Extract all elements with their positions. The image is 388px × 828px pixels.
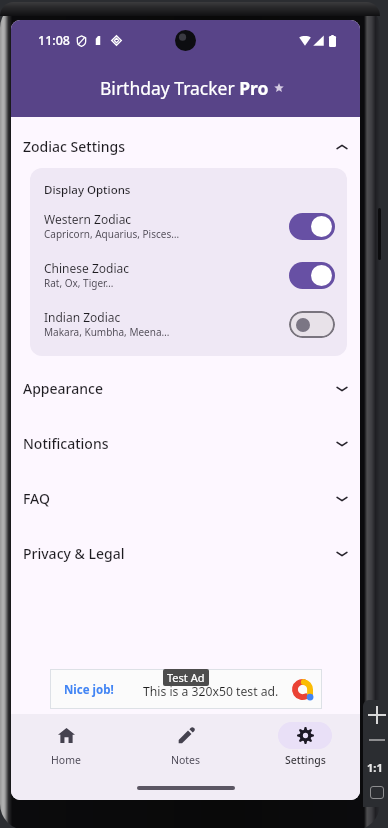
staticText: 1:1 — [367, 760, 383, 775]
button[interactable]: Notifications — [11, 422, 360, 465]
staticText: Chinese Zodiac — [44, 260, 130, 276]
staticText: Makara, Kumbha, Meena… — [44, 325, 170, 339]
staticText: Indian Zodiac — [44, 309, 121, 325]
staticText: Notes — [171, 753, 201, 767]
staticText: Settings — [285, 753, 326, 767]
button[interactable]: Indian Zodiac — [44, 309, 335, 339]
button[interactable]: Toggle on — [289, 213, 335, 240]
staticText: Test Ad — [167, 670, 205, 685]
staticText: This is a 320x50 test ad. — [143, 683, 279, 700]
staticText: Display Options — [44, 182, 131, 198]
button[interactable]: Appearance — [11, 367, 360, 410]
staticText: Nice job! — [64, 682, 114, 698]
staticText: Western Zodiac — [44, 211, 132, 227]
staticText: Notifications — [23, 434, 109, 453]
staticText: Appearance — [23, 379, 103, 398]
button[interactable]: Toggle on — [289, 262, 335, 289]
staticText: Rat, Ox, Tiger… — [44, 276, 114, 290]
button[interactable]: Toggle off — [289, 311, 335, 338]
staticText: Home — [51, 753, 81, 767]
button[interactable]: Home — [39, 714, 93, 774]
button[interactable]: Privacy & Legal — [11, 532, 360, 575]
button[interactable]: FAQ — [11, 477, 360, 520]
button[interactable]: Chinese Zodiac — [44, 260, 335, 290]
button[interactable]: Western Zodiac — [44, 211, 335, 241]
staticText: Capricorn, Aquarius, Pisces… — [44, 227, 180, 241]
staticText: FAQ — [23, 489, 50, 508]
button[interactable]: Notes — [159, 714, 213, 774]
button[interactable]: Settings — [278, 714, 332, 774]
staticText: Birthday Tracker Pro — [100, 76, 269, 100]
staticText: Privacy & Legal — [23, 544, 125, 563]
staticText: 11:08 — [38, 32, 71, 49]
staticText: Zodiac Settings — [23, 137, 126, 156]
button[interactable]: Zodiac Settings — [11, 125, 360, 168]
